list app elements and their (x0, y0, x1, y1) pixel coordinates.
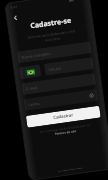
staticText: Cadastre-se (30, 16, 72, 31)
staticText: E-mail (26, 85, 38, 92)
staticText: Celular (48, 65, 62, 72)
staticText: Cadastrar (53, 112, 74, 121)
staticText: Termos de uso (54, 129, 77, 136)
staticText: Nome completo (21, 51, 52, 60)
button[interactable]: Select country code (19, 64, 41, 79)
button[interactable]: Senha (23, 89, 98, 111)
button[interactable]: Back (9, 12, 21, 23)
button[interactable]: Termos de uso (53, 129, 78, 136)
staticText: 9:41 (10, 4, 19, 10)
button[interactable]: Celular (44, 57, 94, 76)
button[interactable]: Cadastrar (26, 106, 101, 128)
staticText: Ao continuar, você concorda com os (32, 122, 98, 135)
button[interactable]: Nome completo (17, 41, 92, 63)
staticText: Informe seus dados para criar sua conta (18, 27, 86, 46)
button[interactable]: E-mail (21, 73, 96, 95)
staticText: Senha (28, 101, 41, 107)
